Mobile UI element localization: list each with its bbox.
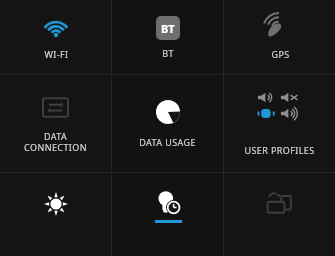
button[interactable]: Data usage (135, 100, 200, 148)
staticText: BT (161, 21, 175, 36)
button[interactable]: Wi-Fi (39, 15, 73, 60)
button[interactable]: Data connection (20, 94, 91, 153)
staticText: DATA CONNECTION (24, 130, 87, 153)
button[interactable]: User profiles (240, 91, 319, 156)
staticText: GPS (271, 48, 290, 60)
staticText: BT (162, 47, 174, 59)
staticText: WI-FI (44, 48, 69, 60)
button[interactable]: Bluetooth (152, 16, 184, 59)
button[interactable]: Auto rotate (224, 173, 335, 256)
staticText: DATA USAGE (139, 136, 196, 148)
staticText: USER PROFILES (244, 144, 315, 156)
button[interactable]: GPS (263, 15, 297, 60)
button[interactable]: Brightness (0, 173, 111, 256)
button[interactable]: Notification light (112, 173, 223, 256)
